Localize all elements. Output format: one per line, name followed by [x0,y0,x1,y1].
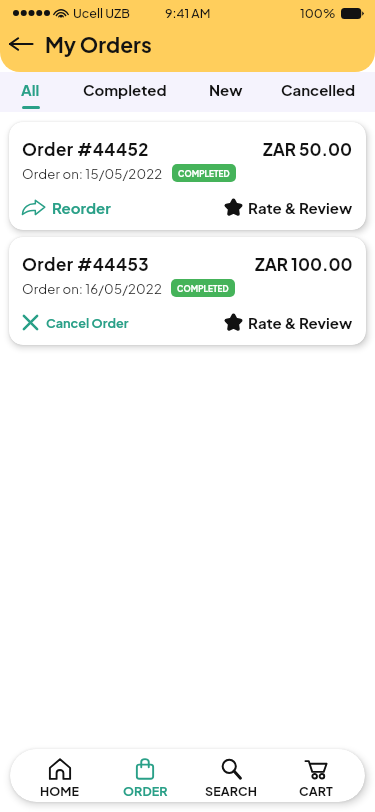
staticText: COMPLETED [178,168,230,178]
staticText: COMPLETED [177,283,229,293]
staticText: 9:41 AM [165,5,211,21]
button[interactable]: Cancelled [262,72,375,112]
button[interactable]: Order #44452 [9,122,366,230]
staticText: Reorder [52,198,111,217]
button[interactable]: Rate & Review [225,313,353,332]
staticText: Rate & Review [248,198,353,217]
button[interactable]: All [0,72,60,112]
button[interactable]: Reorder [22,198,111,217]
staticText: Order #44452 [22,138,149,159]
staticText: Completed [83,80,167,99]
staticText: Rate & Review [248,313,353,332]
staticText: ORDER [123,783,168,799]
button[interactable]: HOME [31,753,89,799]
button[interactable]: SEARCH [202,753,260,799]
staticText: ZAR 100.00 [255,253,353,274]
button[interactable]: Rate & Review [225,198,353,217]
button[interactable]: Order #44453 [9,237,366,345]
staticText: Order on: 15/05/2022 [22,165,163,182]
staticText: Cancel Order [46,315,129,331]
button[interactable]: ORDER [116,753,174,799]
staticText: Cancelled [281,80,356,99]
staticText: ZAR 50.00 [263,138,353,159]
button[interactable]: New [189,72,262,112]
button[interactable]: Cancel Order [22,314,129,331]
staticText: All [21,80,40,99]
staticText: HOME [40,783,80,799]
staticText: CART [299,783,333,799]
button[interactable]: Completed [60,72,189,112]
staticText: 100% [300,5,336,21]
staticText: Order #44453 [22,253,150,274]
staticText: Order on: 16/05/2022 [22,280,162,297]
button[interactable]: CART [287,753,345,799]
staticText: SEARCH [205,783,258,799]
staticText: New [209,80,243,99]
staticText: My Orders [45,31,152,57]
staticText: Ucell UZB [73,5,130,21]
button[interactable]: Back [4,27,38,61]
